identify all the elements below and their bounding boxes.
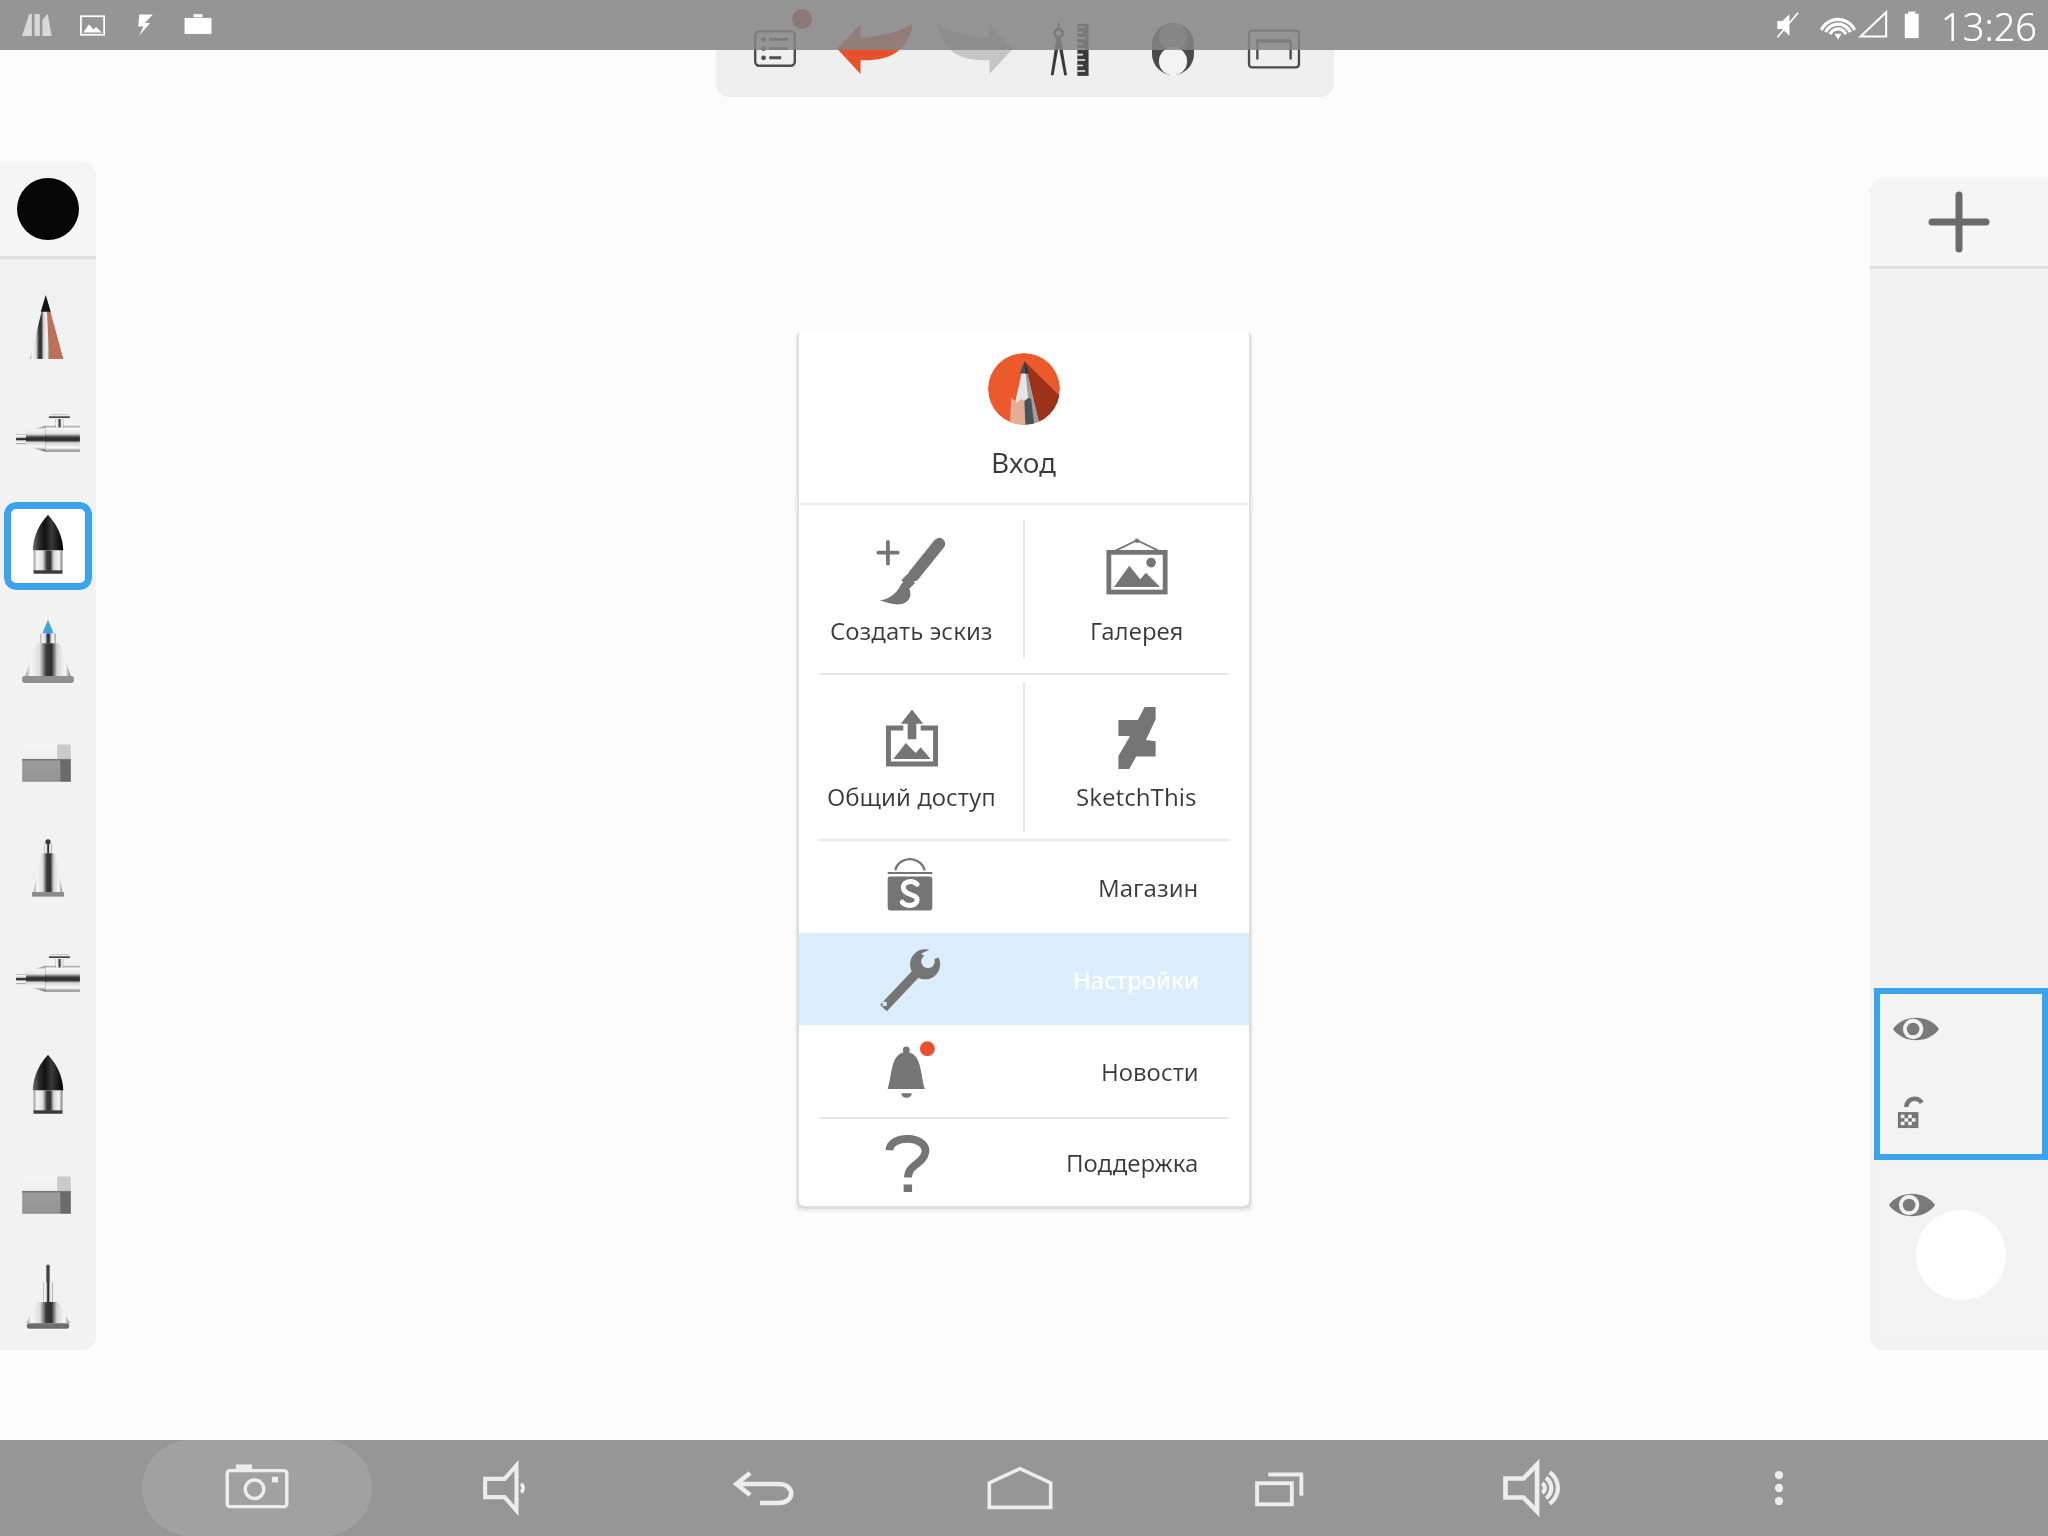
button[interactable]: Brush tool bbox=[0, 816, 96, 924]
staticText: Создать эскиз bbox=[830, 614, 993, 647]
other: Menu bbox=[753, 27, 797, 71]
other: Brush tool bbox=[10, 832, 86, 908]
other: Recents bbox=[1256, 1464, 1312, 1512]
button[interactable]: Brush tool bbox=[0, 276, 96, 384]
button[interactable]: Redo bbox=[929, 0, 1021, 97]
button[interactable]: Volume down bbox=[456, 1440, 564, 1536]
other: Undo bbox=[837, 21, 913, 77]
button[interactable]: Brush tool bbox=[0, 600, 96, 708]
button[interactable]: Back bbox=[711, 1440, 819, 1536]
button[interactable]: SketchThis bbox=[1024, 675, 1249, 839]
staticText: Магазин bbox=[1098, 871, 1199, 904]
staticText: Новости bbox=[1101, 1055, 1199, 1088]
button[interactable]: Toggle layer visibility bbox=[1874, 1166, 2048, 1340]
button[interactable]: Undo bbox=[829, 0, 921, 97]
button[interactable]: Brush tool bbox=[0, 924, 96, 1032]
button[interactable]: Volume up bbox=[1480, 1440, 1588, 1536]
other: Brush tool bbox=[10, 1261, 86, 1337]
button[interactable]: Brush tool bbox=[0, 708, 96, 816]
staticText: 13:26 bbox=[1941, 0, 2038, 50]
button[interactable]: Новости bbox=[799, 1025, 1249, 1117]
other: Brush tool bbox=[10, 1048, 86, 1124]
other: Brush tool bbox=[10, 508, 86, 584]
other: Volume up bbox=[1503, 1463, 1565, 1513]
button[interactable]: Brush tool bbox=[0, 1140, 96, 1248]
other: Brush tool bbox=[10, 940, 86, 1016]
staticText: Общий доступ bbox=[827, 780, 996, 813]
button[interactable]: Brush tool bbox=[0, 1032, 96, 1140]
other: Redo bbox=[937, 21, 1013, 77]
staticText: SketchThis bbox=[1076, 780, 1197, 813]
button[interactable]: Symmetry bbox=[1127, 0, 1219, 97]
other: Home bbox=[987, 1467, 1053, 1509]
other: Add layer bbox=[1930, 193, 1988, 251]
other: Symmetry bbox=[1152, 23, 1194, 75]
button[interactable]: Галерея bbox=[1024, 505, 1249, 673]
other: Toggle layer visibility bbox=[1888, 1190, 1936, 1220]
button[interactable]: Recents bbox=[1230, 1440, 1338, 1536]
button[interactable]: Toggle layer visibility bbox=[1874, 988, 2048, 1160]
staticText: Галерея bbox=[1090, 614, 1184, 647]
other: Brush tool bbox=[10, 616, 86, 692]
button[interactable]: Color bbox=[0, 162, 96, 256]
button[interactable]: Screenshot bbox=[203, 1440, 311, 1536]
button[interactable]: Вход bbox=[799, 330, 1249, 503]
button[interactable]: Общий доступ bbox=[799, 675, 1024, 839]
other: Volume down bbox=[483, 1464, 537, 1512]
other: Toggle layer visibility bbox=[1892, 1014, 1940, 1044]
button[interactable]: Add layer bbox=[1870, 178, 2048, 266]
other: Brush tool bbox=[10, 292, 86, 368]
other: Fullscreen bbox=[1248, 29, 1300, 69]
other: Screenshot bbox=[226, 1457, 288, 1519]
button[interactable]: Поддержка bbox=[799, 1119, 1249, 1206]
other: Brush tool bbox=[10, 400, 86, 476]
button[interactable]: Fullscreen bbox=[1228, 0, 1320, 97]
other: Rulers bbox=[1046, 21, 1102, 77]
button[interactable]: Menu bbox=[729, 0, 821, 97]
button[interactable]: Rulers bbox=[1028, 0, 1120, 97]
button[interactable]: Brush tool bbox=[0, 1248, 96, 1350]
other: Brush tool bbox=[10, 1156, 86, 1232]
staticText: Настройки bbox=[1073, 963, 1199, 996]
other: Back bbox=[734, 1463, 796, 1513]
button[interactable]: Brush tool bbox=[0, 384, 96, 492]
button[interactable]: Home bbox=[966, 1440, 1074, 1536]
button[interactable]: Создать эскиз bbox=[799, 505, 1024, 673]
button[interactable]: More options bbox=[1725, 1440, 1833, 1536]
staticText: Вход bbox=[991, 443, 1057, 481]
staticText: Поддержка bbox=[1066, 1146, 1199, 1179]
button[interactable]: Brush tool bbox=[0, 492, 96, 600]
button[interactable]: Магазин bbox=[799, 841, 1249, 933]
other: Brush tool bbox=[10, 724, 86, 800]
button[interactable]: Настройки bbox=[799, 933, 1249, 1025]
other: More options bbox=[1761, 1470, 1797, 1506]
other: Color bbox=[17, 178, 79, 240]
other: Lock layer bbox=[1896, 1098, 1928, 1132]
